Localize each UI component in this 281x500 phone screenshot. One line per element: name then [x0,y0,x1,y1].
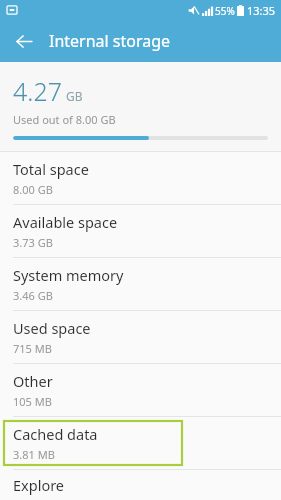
staticText: 55% [215,4,235,18]
staticText: GB [66,88,83,104]
staticText: 105 MB [13,394,52,409]
staticText: 4.27 [13,74,62,108]
button[interactable]: Available space [0,205,281,257]
staticText: Cached data [13,424,98,444]
staticText: 3.73 GB [13,235,53,250]
button[interactable]: Back [8,25,40,57]
staticText: 8.00 GB [13,182,53,197]
button[interactable]: Used space [0,311,281,363]
staticText: 13:35 [247,3,276,18]
button[interactable]: Other [0,364,281,416]
staticText: Other [13,371,53,391]
staticText: Internal storage [49,30,171,52]
button[interactable]: Cached data [0,417,281,469]
staticText: Available space [13,212,118,232]
button[interactable]: Explore [0,470,281,500]
button[interactable]: Total space [0,152,281,204]
staticText: Used out of 8.00 GB [13,112,116,127]
staticText: Explore [13,475,65,495]
staticText: Used space [13,318,91,338]
staticText: 715 MB [13,341,52,356]
staticText: Total space [13,159,89,179]
staticText: 3.81 MB [13,447,55,462]
staticText: 3.46 GB [13,288,53,303]
button[interactable]: System memory [0,258,281,310]
staticText: System memory [13,265,124,285]
